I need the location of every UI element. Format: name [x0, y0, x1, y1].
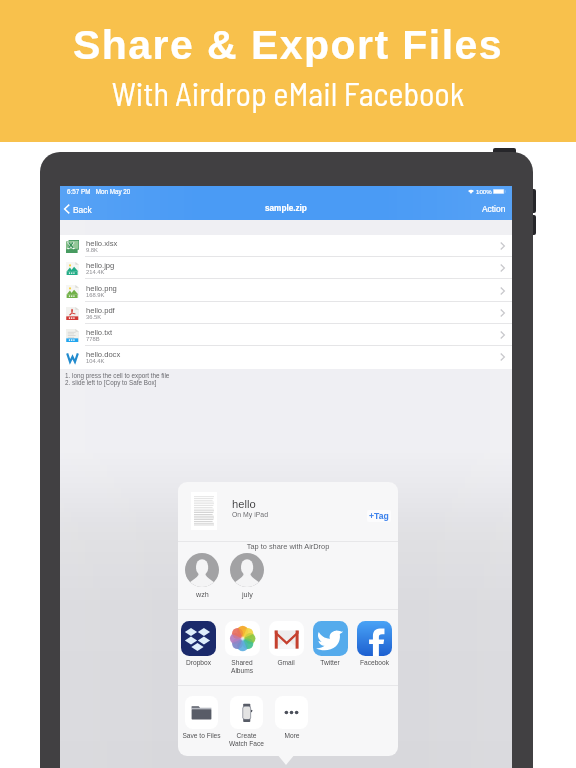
staticText: 1. long press the cell to export the fil… — [65, 372, 170, 379]
staticText: 104.4K — [86, 358, 105, 364]
staticText: 778B — [86, 336, 100, 342]
staticText: Twitter — [320, 659, 340, 666]
button[interactable]: +Tag — [367, 510, 391, 522]
button[interactable]: wzh — [185, 553, 219, 598]
button[interactable]: hello.jpg — [60, 257, 512, 279]
staticText: hello — [232, 498, 256, 511]
staticText: wzh — [196, 590, 209, 598]
staticText: Save to Files — [182, 732, 221, 739]
staticText: Facebook — [360, 659, 389, 666]
button[interactable]: Gmail — [264, 621, 308, 666]
staticText: hello.pdf — [86, 306, 115, 314]
button[interactable]: hello.docx — [60, 346, 512, 368]
staticText: hello.png — [86, 284, 117, 292]
staticText: Create Watch Face — [229, 732, 264, 748]
button[interactable]: hello.txt — [60, 324, 512, 346]
staticText: Dropbox — [186, 659, 211, 666]
button[interactable]: More — [269, 696, 314, 739]
staticText: hello.xlsx — [86, 239, 118, 247]
staticText: +Tag — [369, 511, 389, 521]
staticText: 2. slide left to [Copy to Safe Box] — [65, 379, 157, 386]
staticText: Gmail — [277, 659, 295, 666]
staticText: 36.5K — [86, 314, 102, 320]
button[interactable]: Save to Files — [179, 696, 224, 739]
button[interactable]: Dropbox — [178, 621, 220, 666]
staticText: Tap to share with AirDrop — [178, 542, 398, 550]
staticText: 168.9K — [86, 292, 105, 298]
staticText: 9.8K — [86, 247, 98, 253]
staticText: Action — [482, 204, 506, 213]
staticText: july — [242, 590, 253, 598]
staticText: On My iPad — [232, 511, 268, 519]
staticText: With Airdrop eMail Facebook — [0, 74, 576, 113]
staticText: hello.txt — [86, 328, 113, 336]
staticText: More — [284, 732, 300, 739]
button[interactable]: hello.png — [60, 280, 512, 302]
button[interactable]: Facebook — [352, 621, 396, 666]
staticText: Back — [73, 205, 92, 214]
staticText: Shared Albums — [231, 659, 253, 675]
staticText: hello.docx — [86, 350, 121, 358]
button[interactable]: hello.xlsx — [60, 235, 512, 257]
button[interactable]: Action — [476, 199, 512, 218]
staticText: 6:57 PM Mon May 20 — [67, 188, 131, 195]
staticText: hello.jpg — [86, 261, 115, 269]
button[interactable]: Create Watch Face — [224, 696, 269, 748]
staticText: 214.4K — [86, 269, 105, 275]
staticText: sample.zip — [265, 204, 307, 213]
staticText: Share & Export Files — [0, 22, 576, 68]
button[interactable]: Twitter — [308, 621, 352, 666]
staticText: 100% — [476, 188, 492, 195]
button[interactable]: july — [230, 553, 264, 598]
button[interactable]: Back — [60, 199, 96, 219]
button[interactable]: Shared Albums — [220, 621, 264, 675]
button[interactable]: hello.pdf — [60, 302, 512, 324]
